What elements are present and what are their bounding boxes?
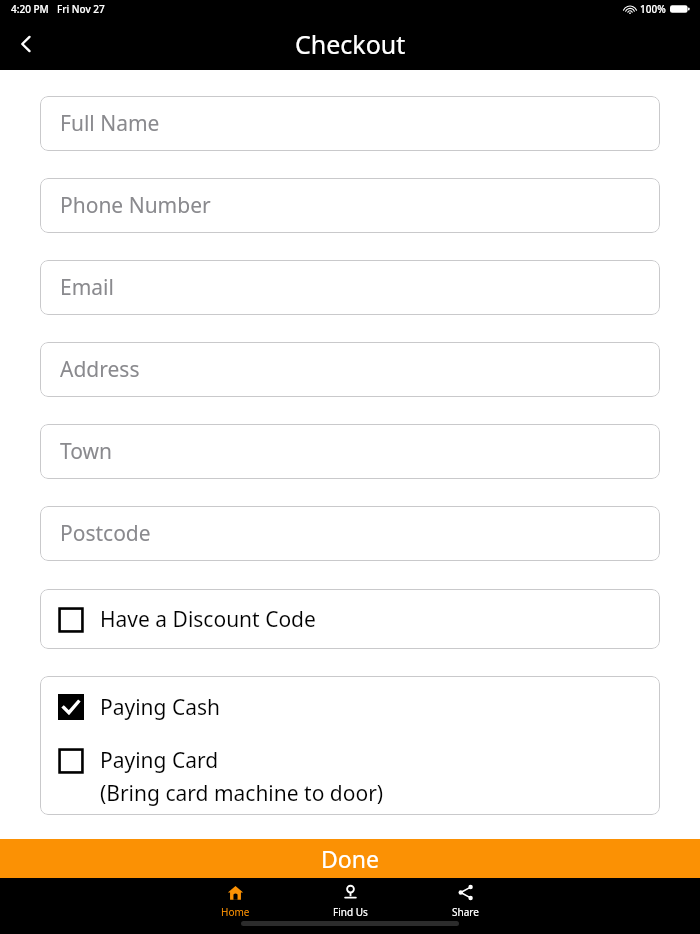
staticText: 100% bbox=[640, 2, 666, 16]
staticText: Paying Card bbox=[100, 746, 219, 775]
button[interactable]: Town bbox=[40, 424, 660, 479]
button[interactable]: Phone Number bbox=[40, 178, 660, 233]
staticText: 4:20 PM bbox=[11, 2, 49, 16]
button[interactable]: Find Us bbox=[293, 884, 408, 919]
staticText: Address bbox=[60, 355, 140, 384]
staticText: Town bbox=[60, 437, 112, 466]
staticText: Share bbox=[452, 905, 479, 919]
staticText: Have a Discount Code bbox=[100, 605, 316, 634]
button[interactable]: Home bbox=[178, 884, 293, 919]
staticText: (Bring card machine to door) bbox=[100, 779, 384, 808]
staticText: Find Us bbox=[333, 905, 368, 919]
staticText: Home bbox=[221, 905, 250, 919]
button[interactable]: Share bbox=[408, 884, 523, 919]
staticText: Full Name bbox=[60, 109, 160, 138]
staticText: Paying Cash bbox=[100, 693, 221, 722]
staticText: Done bbox=[321, 843, 379, 874]
button[interactable]: Done bbox=[0, 839, 700, 878]
button[interactable]: Back bbox=[0, 18, 52, 70]
staticText: Postcode bbox=[60, 519, 151, 548]
button[interactable]: Address bbox=[40, 342, 660, 397]
button[interactable]: Email bbox=[40, 260, 660, 315]
staticText: Phone Number bbox=[60, 191, 211, 220]
button[interactable]: Postcode bbox=[40, 506, 660, 561]
button[interactable]: Paying Card bbox=[40, 738, 660, 815]
button[interactable]: Have a Discount Code bbox=[40, 589, 660, 649]
button[interactable]: Paying Cash bbox=[40, 676, 660, 738]
staticText: Checkout bbox=[295, 27, 406, 61]
button[interactable]: Full Name bbox=[40, 96, 660, 151]
staticText: Fri Nov 27 bbox=[57, 2, 105, 16]
staticText: Email bbox=[60, 273, 114, 302]
